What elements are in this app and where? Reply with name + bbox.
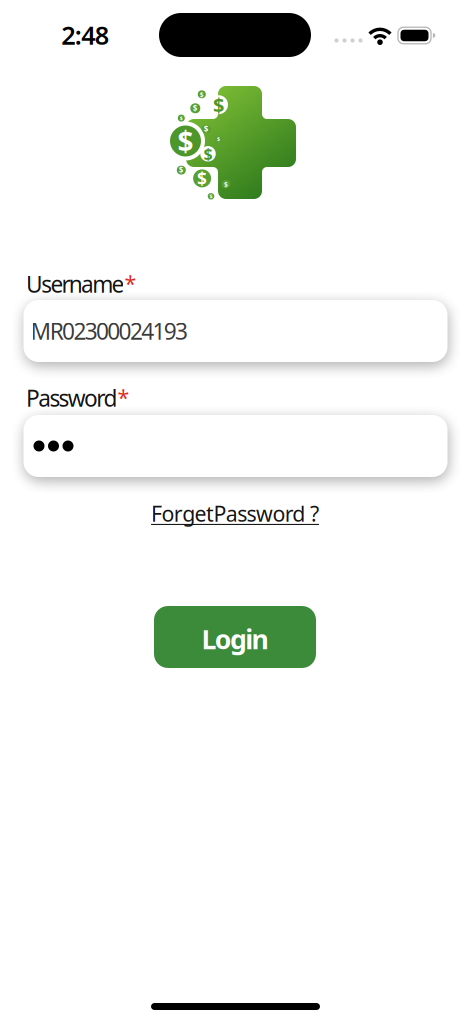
staticText: $ — [203, 143, 212, 164]
staticText: $ — [197, 167, 207, 190]
staticText: Login — [201, 621, 269, 657]
staticText: * — [117, 383, 129, 411]
button[interactable]: Login — [154, 606, 316, 668]
button[interactable] — [23, 415, 447, 477]
staticText: Password — [26, 383, 117, 413]
staticText: Username — [26, 269, 124, 299]
staticText: $ — [179, 165, 184, 175]
button[interactable]: ForgetPassword ? — [151, 499, 319, 528]
staticText: 2:48 — [61, 18, 109, 52]
staticText: MR02300024193 — [30, 316, 188, 346]
staticText: $ — [224, 180, 228, 189]
staticText: * — [124, 269, 136, 297]
button[interactable]: MR02300024193 — [23, 300, 447, 362]
staticText: $ — [193, 103, 198, 114]
staticText: $ — [217, 135, 220, 142]
staticText: $ — [180, 115, 183, 122]
staticText: $ — [204, 124, 209, 134]
staticText: ForgetPassword ? — [151, 499, 319, 528]
staticText: $ — [209, 193, 212, 200]
staticText: $ — [213, 91, 224, 118]
staticText: $ — [200, 90, 204, 99]
staticText: $ — [177, 122, 193, 160]
